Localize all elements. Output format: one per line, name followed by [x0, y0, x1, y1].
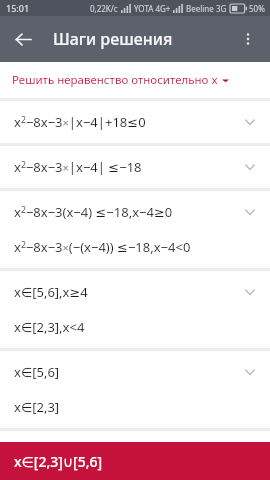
staticText: Шаги решения: [53, 28, 173, 50]
staticText: Beeline 3G: [186, 3, 227, 14]
button[interactable]: Back: [4, 20, 42, 58]
staticText: x∈[5,6]: [14, 363, 60, 381]
staticText: x2−8x−3×|x−4| ≤−18: [14, 158, 142, 176]
button[interactable]: x2−8x−3×|x−4| ≤−18: [0, 146, 270, 188]
staticText: x∈[5,6],x≥4: [14, 283, 88, 301]
button[interactable]: x∈[5,6],x≥4: [0, 271, 270, 348]
button[interactable]: More options: [229, 20, 267, 58]
button[interactable]: x∈[5,6]: [0, 351, 270, 428]
other: Expand step: [238, 360, 262, 384]
staticText: x2−8x−3(x−4) ≤−18,x−4≥0: [14, 203, 173, 221]
staticText: 0,22K/c: [90, 3, 118, 14]
staticText: x2−8x−3×|x−4|+18≤0: [14, 113, 146, 131]
other: Expand step: [238, 110, 262, 134]
staticText: 50%: [249, 3, 265, 14]
staticText: YOTA 4G+: [134, 3, 171, 14]
staticText: x2−8x−3×(−(x−4)) ≤−18,x−4<0: [14, 238, 191, 256]
other: Expand step: [238, 280, 262, 304]
other: Expand step: [238, 155, 262, 179]
button[interactable]: x2−8x−3(x−4) ≤−18,x−4≥0: [0, 191, 270, 268]
staticText: x∈[2,3]∪[5,6]: [14, 452, 103, 471]
staticText: x∈[2,3],x<4: [14, 318, 85, 336]
button[interactable]: Решить неравенство относительно x: [0, 62, 270, 98]
staticText: 15:01: [6, 2, 30, 14]
other: Expand step: [238, 200, 262, 224]
button[interactable]: x∈[2,3]∪[5,6]: [0, 442, 270, 480]
staticText: x∈[2,3]: [14, 398, 60, 416]
button[interactable]: x2−8x−3×|x−4|+18≤0: [0, 101, 270, 143]
staticText: Решить неравенство относительно x: [12, 72, 218, 88]
